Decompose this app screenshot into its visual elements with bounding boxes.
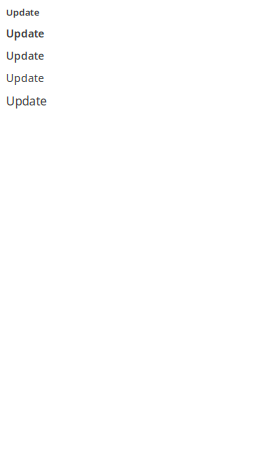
staticText: Update — [6, 93, 47, 109]
staticText: Update — [6, 71, 44, 85]
staticText: Update — [6, 49, 44, 63]
staticText: Update — [6, 26, 44, 41]
staticText: Update — [6, 6, 39, 18]
